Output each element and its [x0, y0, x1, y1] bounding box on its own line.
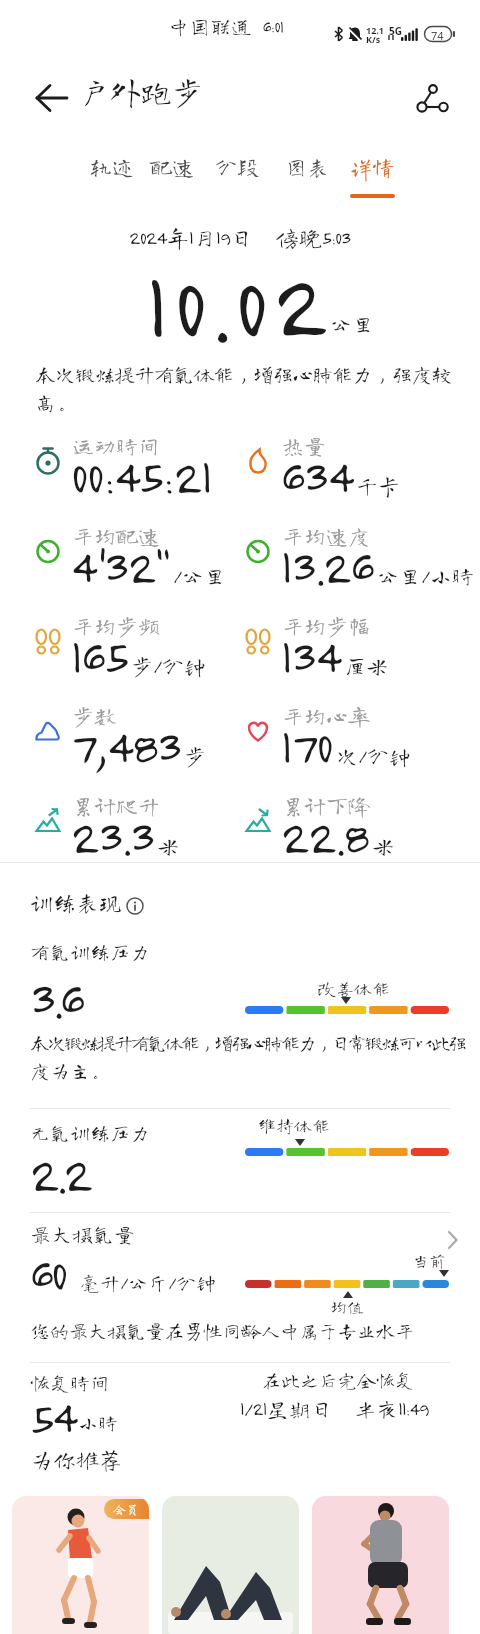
staticText: 恢复时间	[30, 1372, 110, 1392]
staticText: 中国联通 6:01	[168, 16, 284, 37]
staticText: 小时	[78, 1412, 118, 1432]
staticText: 12.1	[366, 24, 384, 36]
button[interactable]	[162, 1496, 299, 1634]
staticText: 无氧训练压力	[30, 1122, 150, 1142]
staticText: 有氧训练压力	[30, 941, 150, 961]
staticText: 54	[30, 1389, 75, 1444]
button[interactable]: 图表	[277, 152, 337, 200]
staticText: 134	[281, 628, 341, 684]
staticText: 平均步频	[72, 615, 161, 637]
staticText: 2024年1月19日 傍晚5:03	[129, 226, 351, 249]
staticText: 千卡	[356, 475, 401, 497]
staticText: 图表	[285, 156, 330, 178]
staticText: 毫升/公斤/分钟	[80, 1272, 217, 1292]
staticText: 米	[372, 835, 395, 857]
staticText: 运动时间	[72, 435, 161, 457]
staticText: 户外跑步	[79, 76, 203, 107]
staticText: 在此之后完全恢复	[262, 1370, 415, 1389]
button[interactable]: 分段	[207, 152, 267, 200]
staticText: 平均步幅	[282, 615, 371, 637]
staticText: 1/21星期日 半夜11:49	[240, 1398, 429, 1420]
button[interactable]: 配速	[142, 152, 202, 200]
staticText: 步/分钟	[131, 655, 206, 677]
staticText: 轨迹	[90, 156, 135, 178]
staticText: 步	[184, 745, 207, 767]
staticText: K/s	[366, 33, 381, 45]
staticText: 平均心率	[282, 705, 371, 727]
staticText: 累计爬升	[72, 795, 161, 817]
button[interactable]	[0, 1222, 480, 1254]
button[interactable]	[408, 78, 456, 122]
staticText: 步数	[72, 705, 117, 727]
staticText: 详情	[350, 156, 395, 178]
staticText: /公里	[173, 565, 226, 587]
staticText: 次/分钟	[336, 745, 411, 767]
staticText: 5G	[389, 24, 402, 38]
staticText: 平均速度	[282, 525, 371, 547]
staticText: 74	[431, 28, 444, 43]
staticText: 本次锻炼提升有氧体能，增强心肺能力，强度较	[35, 364, 451, 385]
staticText: 累计下降	[282, 795, 371, 817]
staticText: 3.6	[30, 969, 83, 1027]
staticText: 165	[71, 628, 128, 684]
staticText: 厘米	[344, 655, 389, 677]
staticText: 本次锻炼提升有氧体能，增强心肺能力，日常锻炼可以此强	[30, 1032, 465, 1052]
staticText: 4'32"	[71, 538, 170, 594]
staticText: 00:45:21	[71, 448, 212, 504]
staticText: 公里/小时	[377, 565, 474, 587]
button[interactable]	[447, 1230, 459, 1250]
staticText: 13.26	[281, 538, 374, 594]
staticText: 当前	[412, 1252, 446, 1269]
staticText: 为你推荐	[30, 1448, 122, 1471]
staticText: 7,483	[71, 718, 181, 774]
staticText: 634	[281, 448, 353, 504]
staticText: 热量	[282, 435, 327, 457]
button[interactable]	[312, 1496, 449, 1634]
staticText: 2.2	[30, 1144, 91, 1202]
staticText: 度为主。	[30, 1060, 110, 1080]
staticText: 分段	[215, 156, 260, 178]
staticText: 公里	[330, 313, 375, 335]
staticText: 均值	[330, 1298, 364, 1315]
staticText: 维持体能	[258, 1116, 330, 1134]
staticText: 训练表现	[30, 891, 122, 914]
staticText: 米	[157, 835, 180, 857]
staticText: 22.8	[281, 808, 369, 864]
staticText: 会员	[113, 1503, 140, 1516]
button[interactable]: 详情	[342, 152, 402, 200]
staticText: 高。	[35, 392, 77, 413]
button[interactable]: 会员	[12, 1496, 149, 1634]
staticText: 改善体能	[318, 979, 390, 997]
button[interactable]	[24, 80, 80, 120]
staticText: 23.3	[71, 808, 154, 864]
staticText: 170	[281, 718, 333, 774]
staticText: 最大摄氧量	[30, 1224, 135, 1245]
staticText: 平均配速	[72, 525, 161, 547]
staticText: 您的最大摄氧量在男性同龄人中属于专业水平	[30, 1320, 414, 1340]
staticText: 10.02	[146, 250, 334, 358]
staticText: 配速	[150, 156, 195, 178]
staticText: 60	[30, 1246, 66, 1301]
button[interactable]: 轨迹	[82, 152, 142, 200]
